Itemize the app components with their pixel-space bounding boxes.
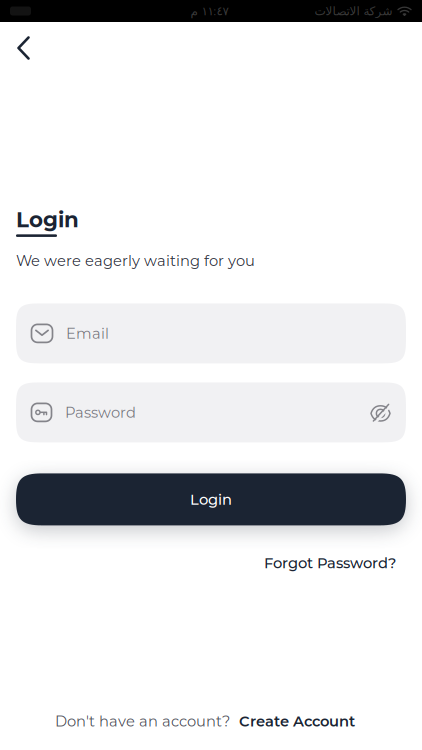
staticText: Don't have an account? xyxy=(55,713,230,730)
staticText: Login xyxy=(190,491,232,508)
staticText: We were eagerly waiting for you xyxy=(16,252,255,269)
staticText: شركة الاتصالات xyxy=(314,4,392,18)
staticText: Create Account xyxy=(239,713,355,730)
staticText: Password xyxy=(65,404,136,421)
button[interactable]: Create Account xyxy=(239,713,355,730)
button[interactable]: Password xyxy=(16,382,406,442)
button[interactable]: Show password xyxy=(370,402,406,422)
staticText: ١١:٤٧ م xyxy=(190,4,228,18)
staticText: Email xyxy=(66,325,109,342)
staticText: Login xyxy=(16,207,79,232)
button[interactable]: Email xyxy=(16,303,406,363)
staticText: Forgot Password? xyxy=(264,554,396,572)
button[interactable]: Forgot Password? xyxy=(264,554,396,572)
button[interactable]: Login xyxy=(16,473,406,525)
button[interactable]: Back xyxy=(0,22,30,60)
